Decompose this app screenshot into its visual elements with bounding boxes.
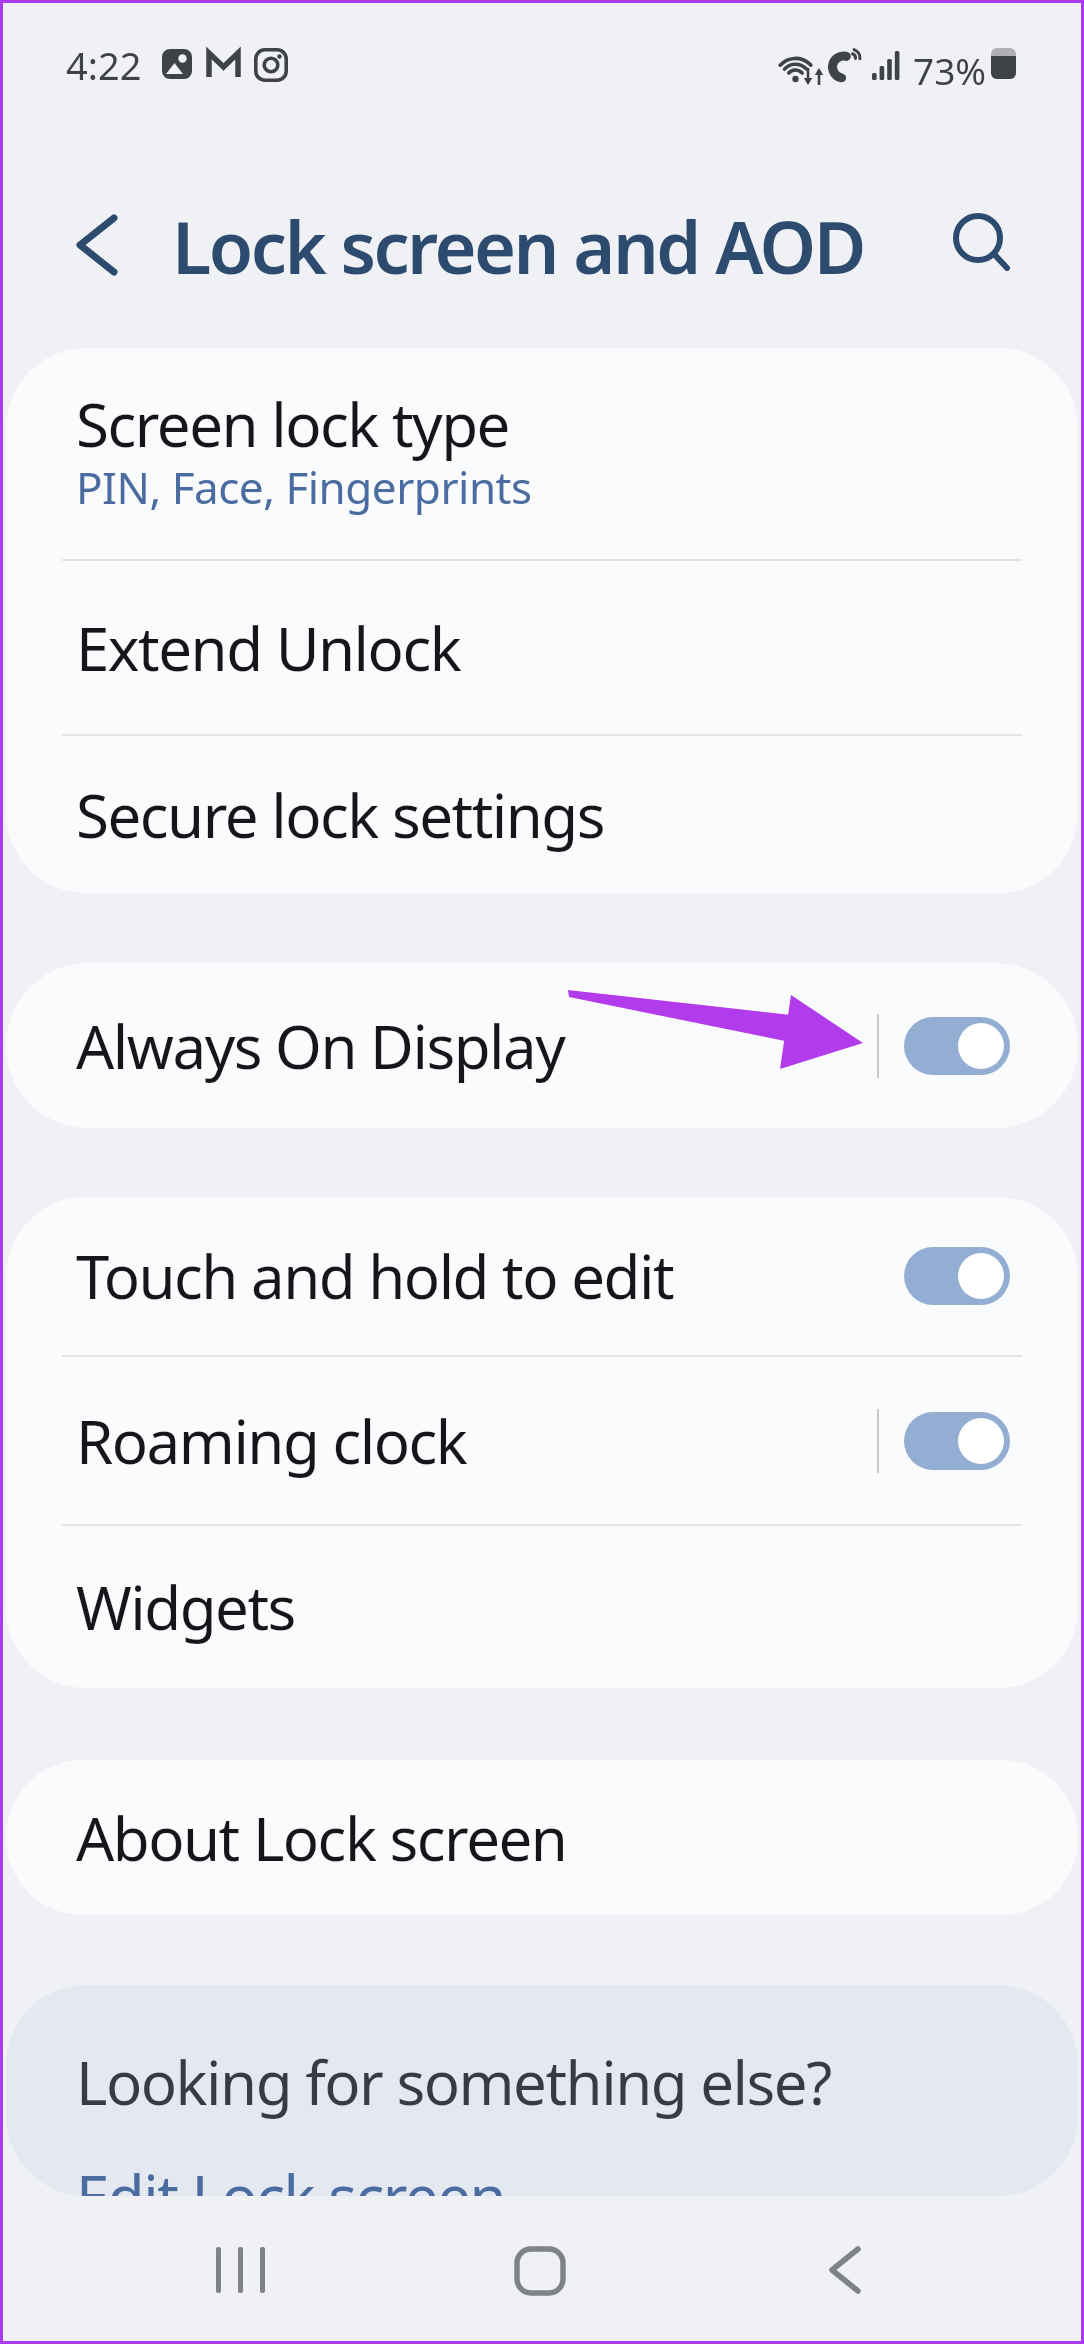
staticText: Looking for something else? [76, 2041, 831, 2123]
button[interactable]: Roaming clock [6, 1357, 1078, 1524]
staticText: Roaming clock [76, 1400, 467, 1482]
staticText: 73% [913, 45, 987, 95]
staticText: Lock screen and AOD [172, 197, 864, 295]
button[interactable]: Touch and hold to edit [6, 1197, 1078, 1355]
button[interactable]: Secure lock settings [6, 736, 1078, 893]
button[interactable]: Always On Display [6, 963, 1078, 1128]
button[interactable] [904, 1412, 1010, 1470]
staticText: Touch and hold to edit [76, 1235, 674, 1317]
button[interactable] [828, 2247, 862, 2293]
staticText: Extend Unlock [76, 607, 461, 689]
staticText: Screen lock type [76, 383, 509, 465]
button[interactable] [950, 212, 1016, 278]
staticText: Always On Display [76, 1005, 565, 1087]
button[interactable] [216, 2247, 265, 2293]
button[interactable]: Extend Unlock [6, 561, 1078, 734]
staticText: PIN, Face, Fingerprints [76, 457, 532, 517]
staticText: About Lock screen [76, 1797, 567, 1879]
button[interactable] [904, 1247, 1010, 1305]
button[interactable] [74, 216, 118, 274]
button[interactable]: Screen lock type [6, 348, 1078, 559]
staticText: Secure lock settings [76, 774, 604, 856]
button[interactable]: About Lock screen [6, 1760, 1078, 1915]
button[interactable]: Widgets [6, 1526, 1078, 1688]
button[interactable] [904, 1017, 1010, 1075]
staticText: 4:22 [66, 39, 142, 91]
staticText: Widgets [76, 1566, 295, 1648]
staticText: Edit Lock screen [76, 2155, 506, 2196]
button[interactable] [514, 2246, 566, 2296]
